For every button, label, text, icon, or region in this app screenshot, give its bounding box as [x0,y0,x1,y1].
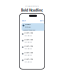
staticText: Back [22,19,26,22]
staticText: Edit [40,19,44,22]
staticText: detail copy [24,54,32,56]
staticText: Item title [24,31,33,34]
staticText: detail copy [24,47,32,50]
staticText: Item title [24,51,33,54]
staticText: Small caption here [25,5,39,7]
staticText: detail copy [24,41,32,43]
staticText: Item title [24,38,33,41]
staticText: Bold Headline [21,8,43,12]
staticText: Item title [24,58,33,60]
staticText: Supporting copy [23,29,36,31]
staticText: Item title [24,45,33,47]
staticText: detail copy [24,34,32,37]
staticText: detail copy [24,61,32,63]
staticText: Hero title [25,23,30,28]
